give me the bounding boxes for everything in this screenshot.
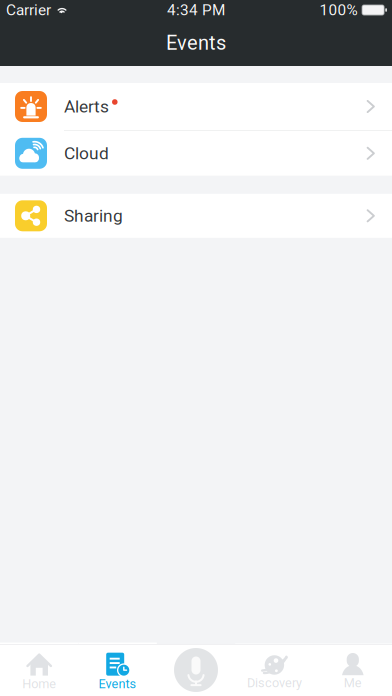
button[interactable]: Home: [0, 644, 78, 696]
staticText: Events: [99, 677, 137, 691]
button[interactable]: Alerts: [0, 83, 392, 130]
staticText: Carrier: [6, 1, 51, 19]
button[interactable]: Cloud: [0, 131, 392, 176]
button[interactable]: Sharing: [0, 194, 392, 238]
staticText: 100%: [320, 1, 358, 19]
button[interactable]: Events: [78, 644, 157, 696]
button[interactable]: Me: [314, 644, 392, 696]
button[interactable]: Discovery: [235, 644, 314, 696]
staticText: Alerts: [64, 96, 109, 117]
staticText: Cloud: [64, 143, 109, 163]
staticText: 4:34 PM: [167, 1, 225, 19]
staticText: Me: [344, 676, 362, 690]
staticText: Events: [166, 31, 226, 55]
staticText: Discovery: [247, 676, 302, 690]
staticText: Sharing: [64, 206, 123, 226]
staticText: Home: [22, 677, 56, 691]
button[interactable]: Record voice message: [157, 644, 235, 696]
